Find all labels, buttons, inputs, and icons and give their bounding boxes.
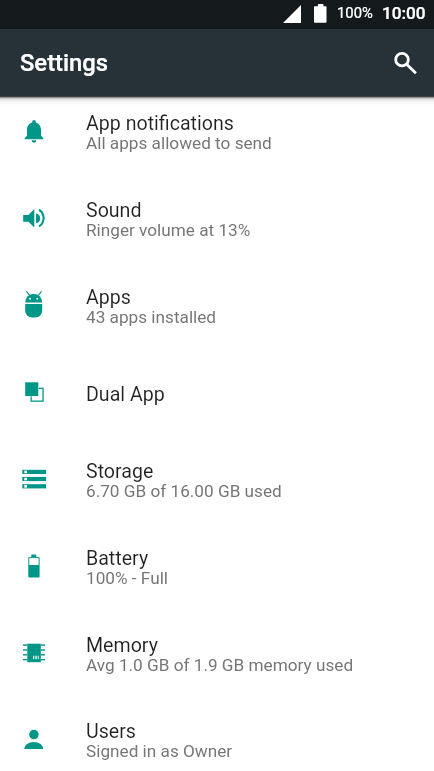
button[interactable]: Search: [378, 35, 426, 83]
staticText: App notifications: [86, 112, 234, 135]
staticText: Dual App: [86, 383, 165, 406]
staticText: Storage: [86, 460, 154, 483]
staticText: Memory: [86, 634, 158, 657]
staticText: Battery: [86, 547, 149, 570]
staticText: Avg 1.0 GB of 1.9 GB memory used: [86, 655, 354, 675]
button[interactable]: Battery: [0, 522, 434, 609]
staticText: Sound: [86, 199, 142, 222]
button[interactable]: Apps: [0, 261, 434, 348]
staticText: 6.70 GB of 16.00 GB used: [86, 481, 282, 501]
staticText: 100% - Full: [86, 568, 168, 588]
button[interactable]: Users: [0, 696, 434, 771]
button[interactable]: Dual App: [0, 348, 434, 435]
staticText: Users: [86, 720, 136, 743]
staticText: Signed in as Owner: [86, 741, 233, 761]
button[interactable]: App notifications: [0, 87, 434, 174]
staticText: 43 apps installed: [86, 307, 217, 327]
staticText: Apps: [86, 286, 131, 309]
staticText: All apps allowed to send: [86, 133, 272, 153]
staticText: Settings: [20, 49, 109, 77]
button[interactable]: Storage: [0, 435, 434, 522]
staticText: 100%: [337, 4, 373, 21]
staticText: 10:00: [382, 3, 426, 23]
button[interactable]: Memory: [0, 609, 434, 696]
button[interactable]: Sound: [0, 174, 434, 261]
staticText: Ringer volume at 13%: [86, 220, 251, 240]
